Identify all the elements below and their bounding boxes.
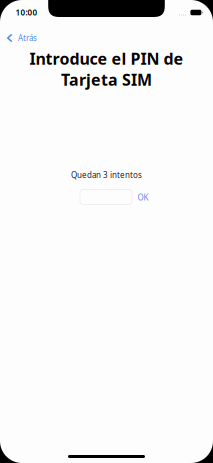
staticText: OK [137, 192, 148, 203]
staticText: 10:00 [15, 7, 37, 18]
button[interactable]: Atrás [0, 28, 45, 48]
staticText: Tarjeta SIM [61, 69, 152, 90]
staticText: Introduce el PIN de [29, 48, 183, 69]
button[interactable]: OK [132, 188, 153, 207]
staticText: Quedan 3 intentos [71, 170, 142, 180]
staticText: Atrás [18, 33, 37, 43]
